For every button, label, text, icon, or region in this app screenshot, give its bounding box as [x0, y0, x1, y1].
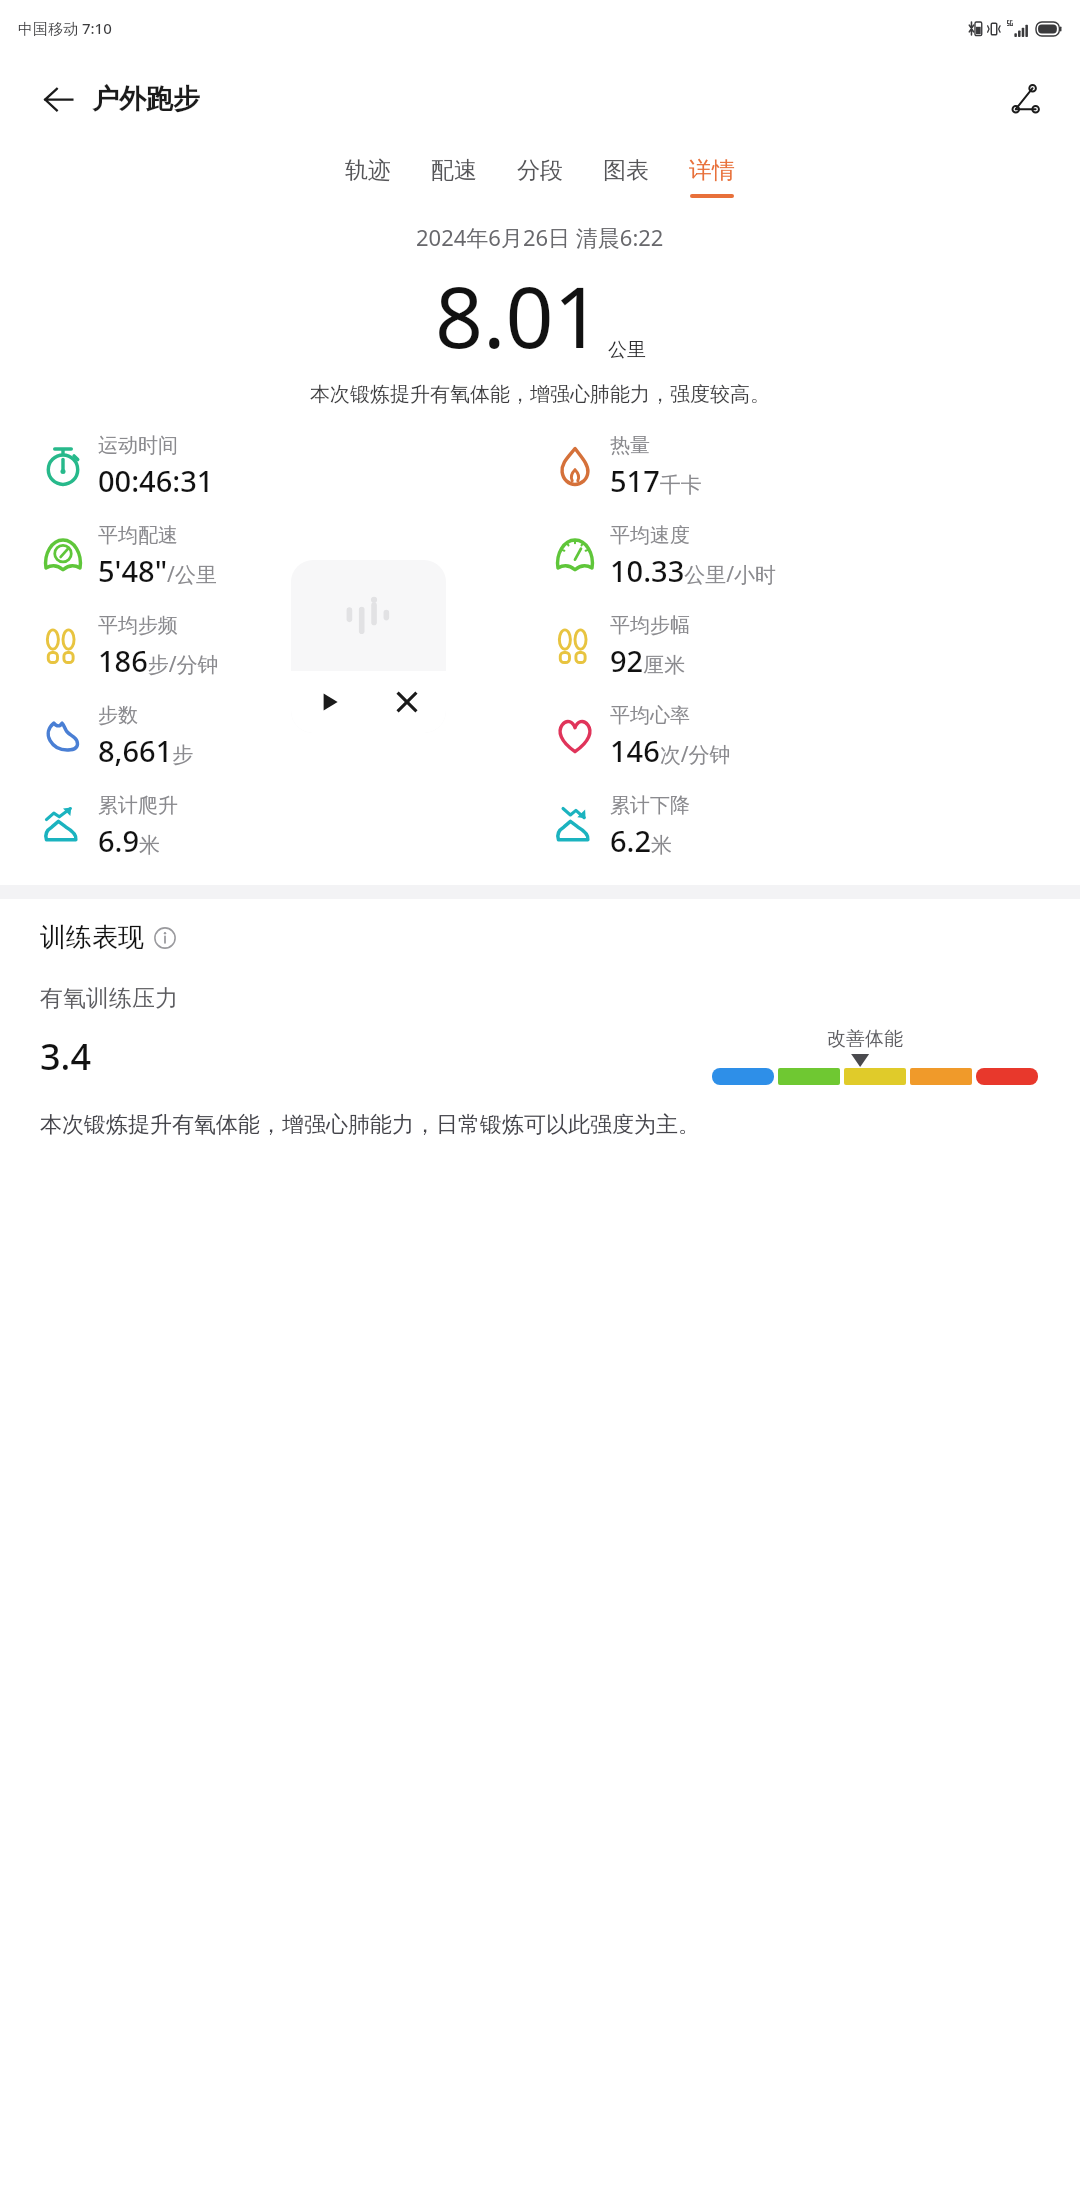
- staticText: 训练表现: [40, 921, 144, 954]
- staticText: 中国移动 7:10: [18, 18, 112, 38]
- button[interactable]: 详情: [669, 150, 755, 204]
- staticText: 平均心率: [610, 703, 690, 728]
- button[interactable]: 热量: [552, 421, 702, 511]
- staticText: 分段: [517, 156, 563, 185]
- staticText: 6.9米: [98, 821, 161, 860]
- button[interactable]: 平均步幅: [552, 601, 690, 691]
- staticText: 00:46:31: [98, 461, 214, 500]
- other: Info: [154, 927, 176, 949]
- button[interactable]: 累计下降: [552, 781, 690, 871]
- button[interactable]: Close: [368, 671, 446, 733]
- staticText: 平均速度: [610, 523, 690, 548]
- staticText: 146次/分钟: [610, 731, 731, 770]
- button[interactable]: 平均速度: [552, 511, 777, 601]
- staticText: 平均配速: [98, 523, 178, 548]
- staticText: 有氧训练压力: [40, 984, 178, 1013]
- button[interactable]: Back: [36, 77, 80, 121]
- staticText: 图表: [603, 156, 649, 185]
- staticText: 平均步频: [98, 613, 178, 638]
- staticText: 户外跑步: [92, 82, 200, 116]
- staticText: 6.2米: [610, 821, 673, 860]
- button[interactable]: 分段: [497, 150, 583, 204]
- staticText: 本次锻炼提升有氧体能，增强心肺能力，强度较高。: [310, 382, 770, 407]
- button[interactable]: 平均配速: [40, 511, 217, 601]
- staticText: 步数: [98, 703, 138, 728]
- staticText: 5'48"/公里: [98, 551, 217, 590]
- button[interactable]: 平均步频: [40, 601, 219, 691]
- staticText: 3.4: [40, 1032, 91, 1081]
- staticText: 10.33公里/小时: [610, 551, 777, 590]
- staticText: 轨迹: [345, 156, 391, 185]
- staticText: 8.01: [435, 258, 602, 372]
- button[interactable]: 配速: [411, 150, 497, 204]
- button[interactable]: 轨迹: [325, 150, 411, 204]
- staticText: 2024年6月26日 清晨6:22: [416, 222, 664, 252]
- staticText: 517千卡: [610, 461, 702, 500]
- staticText: 平均步幅: [610, 613, 690, 638]
- staticText: 186步/分钟: [98, 641, 219, 680]
- button[interactable]: 运动时间: [40, 421, 214, 511]
- staticText: 本次锻炼提升有氧体能，增强心肺能力，日常锻炼可以此强度为主。: [40, 1111, 700, 1139]
- button[interactable]: 训练表现: [40, 921, 176, 954]
- staticText: 8,661步: [98, 731, 194, 770]
- button[interactable]: Play: [291, 671, 368, 733]
- button[interactable]: 累计爬升: [40, 781, 178, 871]
- staticText: 累计下降: [610, 793, 690, 818]
- button[interactable]: 步数: [40, 691, 194, 781]
- button[interactable]: 图表: [583, 150, 669, 204]
- staticText: 公里: [608, 338, 646, 362]
- staticText: 运动时间: [98, 433, 178, 458]
- staticText: 92厘米: [610, 641, 686, 680]
- staticText: 热量: [610, 433, 650, 458]
- staticText: 详情: [689, 156, 735, 185]
- staticText: 改善体能: [827, 1027, 903, 1051]
- staticText: 配速: [431, 156, 477, 185]
- staticText: 累计爬升: [98, 793, 178, 818]
- button[interactable]: 平均心率: [552, 691, 731, 781]
- button[interactable]: Share: [1002, 75, 1050, 123]
